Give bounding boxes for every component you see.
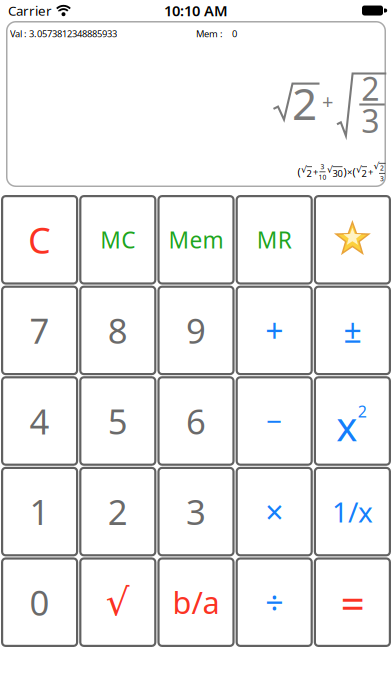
staticText: 5 bbox=[108, 398, 128, 444]
staticText: 1/x bbox=[332, 493, 373, 530]
button[interactable]: 1/x bbox=[314, 467, 391, 556]
button[interactable]: x squared bbox=[314, 376, 391, 466]
staticText: 3 bbox=[380, 174, 384, 183]
staticText: Mem bbox=[168, 225, 223, 255]
button[interactable]: × bbox=[236, 467, 313, 556]
button[interactable]: 4 bbox=[1, 376, 78, 466]
staticText: 4 bbox=[30, 398, 50, 444]
staticText: 3 bbox=[186, 489, 206, 535]
staticText: 2 bbox=[380, 164, 384, 172]
button[interactable]: ÷ bbox=[236, 557, 313, 647]
button[interactable]: = bbox=[314, 557, 391, 647]
button[interactable]: 8 bbox=[79, 286, 156, 375]
staticText: √ bbox=[106, 581, 130, 623]
staticText: 8 bbox=[108, 307, 128, 353]
staticText: + bbox=[265, 309, 283, 352]
staticText: ( bbox=[352, 165, 355, 179]
staticText: ( bbox=[297, 165, 300, 179]
staticText: 2 bbox=[108, 489, 128, 535]
staticText: 2 bbox=[292, 74, 317, 132]
staticText: Val : 3.0573812348885933 bbox=[10, 27, 117, 40]
staticText: 3 bbox=[320, 162, 324, 171]
staticText: 9 bbox=[186, 307, 206, 353]
button[interactable]: √ bbox=[79, 557, 156, 647]
staticText: + bbox=[313, 166, 318, 178]
button[interactable]: b/a bbox=[157, 557, 235, 647]
button[interactable]: 6 bbox=[157, 376, 235, 466]
staticText: C bbox=[28, 216, 51, 264]
staticText: Mem : bbox=[196, 27, 223, 40]
staticText: 6 bbox=[186, 398, 206, 444]
button[interactable]: 1 bbox=[1, 467, 78, 556]
staticText: x bbox=[336, 399, 357, 452]
button[interactable]: 7 bbox=[1, 286, 78, 375]
staticText: 2 bbox=[306, 167, 311, 179]
staticText: 0 bbox=[232, 27, 237, 40]
button[interactable]: MC bbox=[79, 195, 156, 285]
button[interactable]: + bbox=[236, 286, 313, 375]
button[interactable]: Mem bbox=[157, 195, 235, 285]
staticText: 0 bbox=[30, 579, 50, 625]
button[interactable]: ± bbox=[314, 286, 391, 375]
button[interactable]: − bbox=[236, 376, 313, 466]
button[interactable]: MR bbox=[236, 195, 313, 285]
staticText: 2 bbox=[361, 67, 379, 110]
staticText: 2 bbox=[358, 401, 367, 422]
button[interactable]: 2 bbox=[79, 467, 156, 556]
staticText: × bbox=[347, 166, 352, 178]
staticText: + bbox=[368, 166, 373, 178]
staticText: 1 bbox=[30, 489, 50, 535]
staticText: √ bbox=[356, 164, 362, 175]
staticText: √ bbox=[373, 161, 379, 171]
staticText: MC bbox=[100, 225, 135, 255]
staticText: 3 bbox=[361, 99, 379, 142]
staticText: 10:10 AM bbox=[164, 1, 228, 20]
button[interactable]: 0 bbox=[1, 557, 78, 647]
staticText: MR bbox=[257, 225, 292, 255]
staticText: 7 bbox=[30, 307, 50, 353]
button[interactable]: C bbox=[1, 195, 78, 285]
staticText: 10 bbox=[318, 173, 326, 182]
staticText: Carrier bbox=[8, 2, 52, 19]
staticText: √ bbox=[301, 164, 307, 175]
staticText: 2 bbox=[361, 167, 366, 179]
staticText: − bbox=[266, 402, 282, 440]
staticText: √ bbox=[327, 164, 333, 175]
button[interactable]: Favorites bbox=[314, 195, 391, 285]
staticText: ÷ bbox=[265, 581, 283, 623]
button[interactable]: 5 bbox=[79, 376, 156, 466]
staticText: 30 bbox=[332, 167, 342, 179]
staticText: + bbox=[322, 88, 333, 115]
staticText: ) bbox=[343, 165, 346, 179]
staticText: = bbox=[340, 574, 364, 631]
staticText: b/a bbox=[172, 582, 219, 622]
staticText: × bbox=[265, 490, 283, 533]
button[interactable]: 9 bbox=[157, 286, 235, 375]
staticText: ± bbox=[343, 309, 361, 352]
button[interactable]: 3 bbox=[157, 467, 235, 556]
